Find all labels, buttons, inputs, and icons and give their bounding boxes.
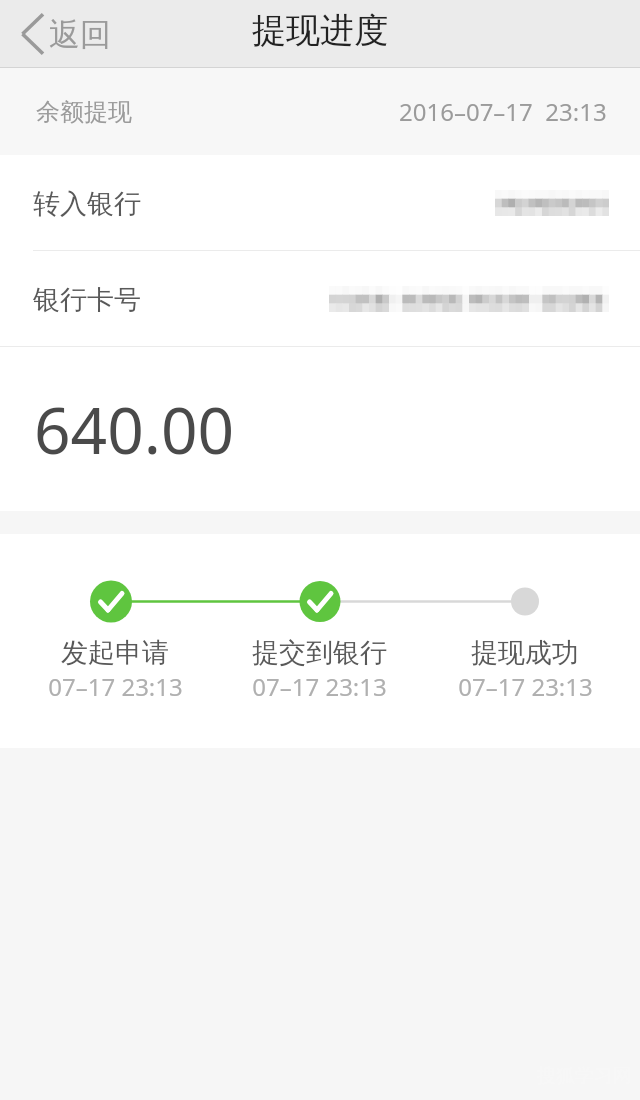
staticText: 余额提现 bbox=[36, 97, 132, 127]
staticText: 提现进度 bbox=[252, 9, 388, 52]
staticText: 2016–07–17 23:13 bbox=[399, 95, 607, 128]
button[interactable]: 返回 Back bbox=[0, 0, 127, 68]
staticText: 640.00 bbox=[34, 386, 235, 473]
staticText: 提交到银行 bbox=[252, 636, 387, 670]
staticText: 07–17 23:13 bbox=[252, 670, 387, 703]
staticText: 07–17 23:13 bbox=[458, 670, 593, 703]
button[interactable]: 转入银行 bbox=[0, 155, 640, 250]
staticText: 提现成功 bbox=[471, 636, 579, 670]
button[interactable]: 银行卡号 bbox=[0, 251, 640, 346]
staticText: 07–17 23:13 bbox=[48, 670, 183, 703]
staticText: 发起申请 bbox=[61, 636, 169, 670]
staticText: 返回 bbox=[49, 15, 111, 54]
staticText: 银行卡号 bbox=[33, 283, 141, 317]
staticText: 转入银行 bbox=[33, 187, 141, 221]
